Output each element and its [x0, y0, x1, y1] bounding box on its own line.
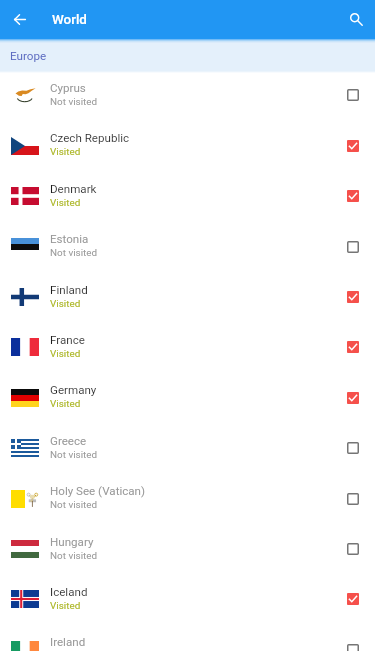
- staticText: Czech Republic: [50, 131, 130, 145]
- button[interactable]: Finland: [0, 272, 375, 322]
- staticText: Estonia: [50, 232, 89, 246]
- staticText: Visited: [50, 146, 81, 158]
- button[interactable]: Holy See (Vatican): [0, 473, 375, 524]
- staticText: Visited: [50, 348, 81, 360]
- staticText: Finland: [50, 283, 88, 297]
- button[interactable]: Visited: [340, 272, 366, 322]
- button[interactable]: Hungary: [0, 524, 375, 574]
- button[interactable]: France: [0, 322, 375, 372]
- button[interactable]: Germany: [0, 372, 375, 423]
- button[interactable]: Greece: [0, 423, 375, 473]
- button[interactable]: Czech Republic: [0, 120, 375, 171]
- staticText: Not visited: [50, 550, 98, 562]
- staticText: Hungary: [50, 535, 94, 549]
- button[interactable]: Cyprus: [0, 73, 375, 120]
- staticText: Cyprus: [50, 81, 86, 95]
- staticText: Holy See (Vatican): [50, 484, 146, 498]
- staticText: Not visited: [50, 247, 98, 259]
- button[interactable]: Search: [339, 0, 374, 39]
- button[interactable]: Not visited: [340, 473, 366, 524]
- staticText: Denmark: [50, 182, 97, 196]
- staticText: Visited: [50, 600, 81, 612]
- staticText: World: [52, 12, 87, 28]
- button[interactable]: Not visited: [340, 423, 366, 473]
- staticText: Germany: [50, 383, 97, 397]
- button[interactable]: Not visited: [340, 524, 366, 574]
- staticText: Visited: [50, 398, 81, 410]
- staticText: Europe: [10, 49, 47, 63]
- button[interactable]: Not visited: [340, 624, 366, 651]
- button[interactable]: Visited: [340, 372, 366, 423]
- button[interactable]: Estonia: [0, 221, 375, 272]
- button[interactable]: Denmark: [0, 171, 375, 221]
- button[interactable]: Visited: [340, 574, 366, 624]
- staticText: Visited: [50, 298, 81, 310]
- button[interactable]: Visited: [340, 171, 366, 221]
- button[interactable]: Visited: [340, 120, 366, 171]
- staticText: Not visited: [50, 499, 98, 511]
- button[interactable]: Back: [0, 0, 40, 39]
- staticText: Greece: [50, 434, 87, 448]
- button[interactable]: Iceland: [0, 574, 375, 624]
- button[interactable]: Not visited: [340, 221, 366, 272]
- staticText: France: [50, 333, 85, 347]
- staticText: Ireland: [50, 635, 86, 649]
- button[interactable]: Not visited: [340, 73, 366, 120]
- staticText: Not visited: [50, 449, 98, 461]
- staticText: Not visited: [50, 96, 98, 108]
- staticText: Visited: [50, 197, 81, 209]
- staticText: Iceland: [50, 585, 88, 599]
- button[interactable]: Visited: [340, 322, 366, 372]
- button[interactable]: Ireland: [0, 624, 375, 651]
